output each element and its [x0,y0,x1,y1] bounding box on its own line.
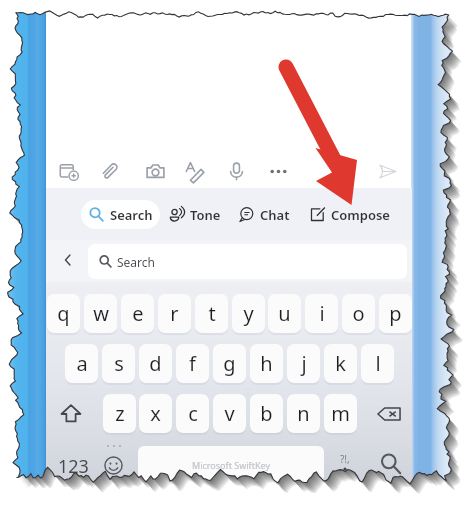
staticText: f [189,350,196,377]
button[interactable]: Format [177,153,213,189]
button[interactable]: More [260,153,296,189]
staticText: d [149,350,162,377]
button[interactable]: z [103,394,136,435]
staticText: t [208,300,216,327]
staticText: v [224,400,235,427]
button[interactable]: Voice [218,153,254,189]
button[interactable]: e [121,294,154,335]
button[interactable]: Tone [163,200,226,229]
staticText: j [301,350,307,377]
staticText: z [115,400,125,427]
button[interactable]: m [324,394,357,435]
button[interactable]: Backspace [368,394,410,433]
staticText: r [170,300,179,327]
staticText: Search [110,206,153,224]
button[interactable]: v [213,394,246,435]
staticText: m [331,400,350,427]
staticText: o [352,300,365,327]
button[interactable]: Camera [137,153,173,189]
button[interactable]: Add [51,153,87,189]
button[interactable]: Search [81,200,160,229]
button[interactable]: Search [378,451,404,477]
button[interactable]: s [102,344,135,385]
staticText: p [389,300,402,327]
staticText: i [319,300,325,327]
button[interactable]: Compose [302,200,397,229]
staticText: b [260,400,273,427]
staticText: x [150,400,161,427]
button[interactable]: Send [369,153,405,189]
other: Arrow [0,0,474,511]
button[interactable]: f [176,344,209,385]
staticText: 123 [58,454,89,479]
button[interactable]: o [342,294,375,335]
staticText: q [57,300,70,327]
button[interactable]: k [324,344,357,385]
button[interactable]: 123 [53,449,93,483]
button[interactable]: a [65,344,98,385]
staticText: y [243,300,254,327]
staticText: s [114,350,124,377]
button[interactable]: c [176,394,209,435]
staticText: Tone [190,206,221,224]
button[interactable]: t [195,294,228,335]
staticText: w [93,300,109,327]
staticText: a [76,350,88,377]
button[interactable]: Emoji [100,452,127,479]
button[interactable]: p [379,294,412,335]
staticText: n [297,400,310,427]
button[interactable]: y [232,294,265,335]
button[interactable]: Chat [232,200,297,229]
button[interactable]: d [139,344,172,385]
button[interactable]: i [305,294,338,335]
button[interactable]: w [84,294,117,335]
button[interactable]: x [139,394,172,435]
staticText: e [132,300,144,327]
button[interactable]: j [287,344,320,385]
staticText: g [223,350,236,377]
staticText: l [375,350,381,377]
button[interactable]: Shift [51,394,91,433]
staticText: Compose [331,206,390,224]
button[interactable]: Back [56,246,80,274]
button[interactable]: q [47,294,80,335]
staticText: u [278,300,291,327]
staticText: Microsoft SwiftKey [192,459,270,471]
button[interactable]: r [158,294,191,335]
staticText: k [335,350,346,377]
button[interactable]: n [287,394,320,435]
button[interactable]: u [268,294,301,335]
button[interactable]: Space [138,446,324,482]
button[interactable]: h [250,344,283,385]
staticText: Search [117,254,155,270]
button[interactable]: ?!, [332,448,358,470]
button[interactable]: l [361,344,394,385]
button[interactable]: g [213,344,246,385]
staticText: c [188,400,198,427]
button[interactable]: Attach [92,153,128,189]
button[interactable]: Search [88,244,407,279]
button[interactable]: b [250,394,283,435]
staticText: Chat [260,206,290,224]
staticText: h [260,350,273,377]
staticText: ?!, [340,452,350,466]
